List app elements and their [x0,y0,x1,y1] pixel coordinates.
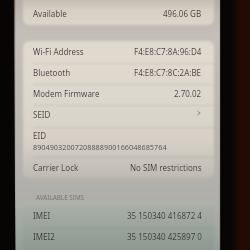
staticText: EID [33,130,46,141]
staticText: F4:E8:C7:8C:2A:BE [134,67,202,78]
staticText: Wi-Fi Address [33,46,84,57]
button[interactable]: EID [23,130,214,144]
staticText: AVAILABLE SIMS [36,193,85,202]
staticText: Available [33,8,67,19]
button[interactable]: Bluetooth [23,67,214,81]
staticText: 2.70.02 [174,88,202,99]
button[interactable]: Modem Firmware [23,88,214,102]
staticText: Carrier Lock [33,162,79,173]
staticText: Modem Firmware [33,88,100,99]
staticText: Bluetooth [33,67,71,78]
staticText: SEID [33,109,51,120]
button[interactable]: IMEI2 [23,231,214,245]
staticText: No SIM restrictions [130,162,202,173]
button[interactable]: Wi-Fi Address [23,46,214,60]
staticText: IMEI [33,210,51,221]
staticText: 35 150340 416872 4 [127,210,202,221]
button[interactable]: Carrier Lock [23,162,214,176]
button[interactable]: SEID [23,109,214,123]
button[interactable]: Available [23,8,214,22]
staticText: 496.06 GB [163,8,202,19]
staticText: IMEI2 [33,231,55,242]
staticText: 89049032007208888900166048685764 [33,142,167,152]
button[interactable]: IMEI [23,210,214,224]
staticText: 35 150340 425897 0 [127,231,202,242]
staticText: F4:E8:C7:8A:96:D4 [134,46,202,57]
